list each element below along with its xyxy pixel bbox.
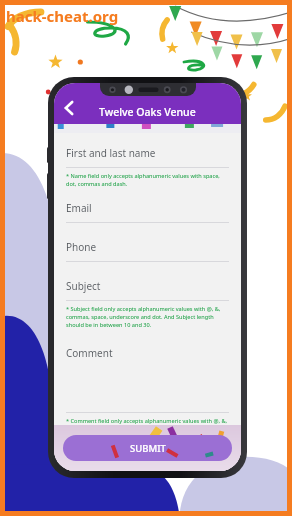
button[interactable]: Comment	[66, 345, 229, 413]
staticText: Phone	[66, 240, 97, 254]
button[interactable]: Back	[54, 93, 84, 123]
staticText: Twelve Oaks Venue	[99, 105, 196, 119]
staticText: Email	[66, 201, 92, 215]
staticText: Subject	[66, 279, 101, 293]
button[interactable]: Subject	[66, 279, 229, 301]
button[interactable]: Email	[66, 201, 229, 223]
button[interactable]: First and last name	[66, 146, 229, 168]
staticText: First and last name	[66, 146, 156, 160]
staticText: * Name field only accepts alphanumeric v…	[66, 172, 229, 188]
button[interactable]: SUBMIT	[63, 435, 232, 461]
staticText: hack-cheat.org	[6, 6, 119, 26]
staticText: * Subject field only accepts alphanumeri…	[66, 305, 229, 329]
staticText: * Comment field only accepts alphanumeri…	[66, 417, 229, 425]
staticText: SUBMIT	[130, 442, 166, 455]
staticText: Comment	[66, 346, 113, 360]
button[interactable]: Phone	[66, 240, 229, 262]
